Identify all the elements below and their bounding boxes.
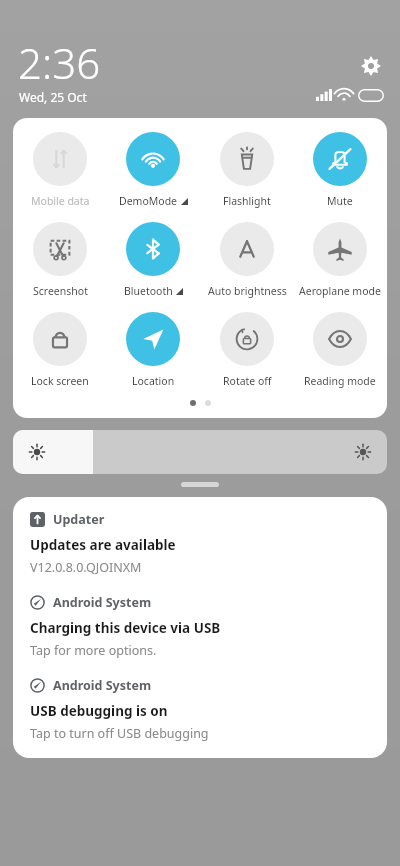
staticText: Android System: [53, 677, 152, 694]
staticText: Aeroplane mode: [299, 284, 381, 298]
button[interactable]: Settings: [358, 53, 384, 79]
staticText: Reading mode: [304, 374, 376, 388]
staticText: Auto brightness: [208, 284, 287, 298]
staticText: USB debugging is on: [30, 702, 168, 720]
button[interactable]: Bluetooth: [108, 222, 198, 298]
button[interactable]: DemoMode: [108, 132, 198, 208]
staticText: Updater: [53, 511, 105, 528]
staticText: Updates are available: [30, 536, 176, 554]
staticText: Mute: [327, 194, 353, 208]
staticText: Flashlight: [223, 194, 271, 208]
staticText: Screenshot: [33, 284, 88, 298]
button[interactable]: Lock screen: [15, 312, 105, 388]
staticText: Tap for more options.: [30, 642, 157, 659]
button[interactable]: Flashlight: [202, 132, 292, 208]
button[interactable]: Aeroplane mode: [295, 222, 385, 298]
staticText: Tap to turn off USB debugging: [30, 725, 209, 742]
staticText: Wed, 25 Oct: [19, 89, 87, 105]
button[interactable]: Reading mode: [295, 312, 385, 388]
button[interactable]: Mobile data: [15, 132, 105, 208]
button[interactable]: Mute: [295, 132, 385, 208]
button[interactable]: Updater: [13, 511, 387, 576]
button[interactable]: Location: [108, 312, 198, 388]
staticText: Location: [132, 374, 175, 388]
button[interactable]: [13, 430, 387, 474]
button[interactable]: Rotate off: [202, 312, 292, 388]
staticText: Android System: [53, 594, 152, 611]
staticText: Lock screen: [31, 374, 89, 388]
staticText: V12.0.8.0.QJOINXM: [30, 559, 142, 576]
staticText: Mobile data: [31, 194, 90, 208]
staticText: Rotate off: [223, 374, 272, 388]
button[interactable]: Auto brightness: [202, 222, 292, 298]
staticText: Bluetooth: [124, 284, 173, 298]
staticText: 2:36: [18, 34, 101, 91]
staticText: Charging this device via USB: [30, 619, 221, 637]
button[interactable]: Android System: [13, 594, 387, 659]
button[interactable]: Android System: [13, 677, 387, 742]
button[interactable]: Screenshot: [15, 222, 105, 298]
staticText: DemoMode: [119, 194, 178, 208]
